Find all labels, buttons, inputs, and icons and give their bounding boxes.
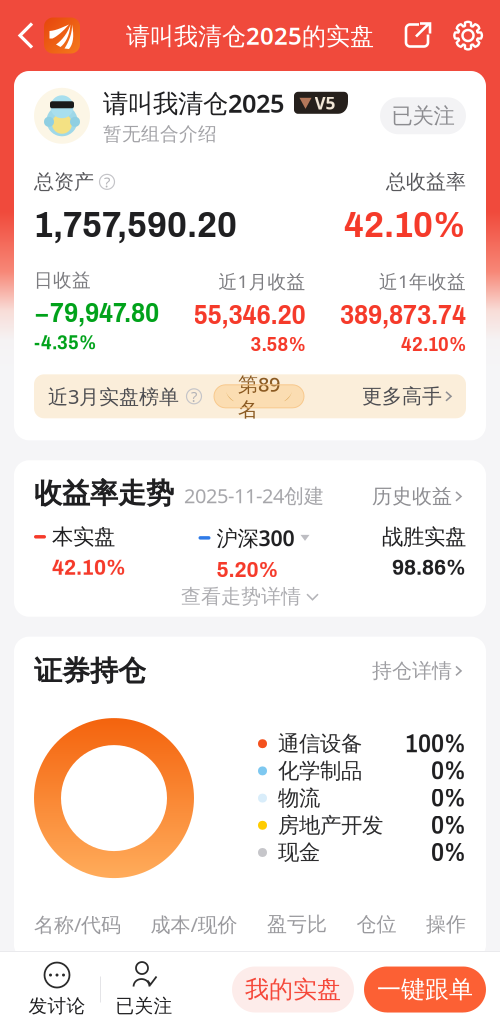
staticText: 查看走势详情	[181, 584, 301, 609]
staticText: 一键跟单	[377, 975, 473, 1004]
staticText: 请叫我清仓2025的实盘	[126, 20, 374, 51]
staticText: 已关注	[391, 103, 454, 129]
button[interactable]: 我的实盘	[232, 966, 354, 1012]
staticText: 0%	[431, 839, 466, 866]
staticText: 仓位	[356, 912, 396, 937]
button[interactable]: 持仓详情	[372, 659, 466, 683]
staticText: 物流	[278, 785, 320, 811]
button[interactable]: 历史收益	[372, 484, 466, 511]
button[interactable]: Back	[10, 5, 44, 65]
staticText: 化学制品	[278, 758, 362, 784]
staticText: 更多高手	[362, 384, 442, 409]
staticText: 历史收益	[372, 484, 452, 509]
staticText: 总收益率	[386, 170, 466, 194]
staticText: 42.10%	[401, 334, 466, 355]
staticText: 成本/现价	[150, 911, 237, 938]
staticText: 1,757,590.20	[34, 204, 237, 245]
staticText: 0%	[431, 757, 466, 785]
staticText: ?	[191, 387, 197, 406]
staticText: 55,346.20	[193, 300, 305, 329]
staticText: ?	[104, 172, 110, 192]
button[interactable]: Share	[396, 7, 440, 63]
staticText: 名称/代码	[34, 911, 121, 938]
staticText: 2025-11-24创建	[184, 482, 324, 509]
button[interactable]: 一键跟单	[364, 966, 486, 1012]
staticText: 42.10%	[344, 204, 466, 245]
staticText: 第89名	[238, 371, 280, 422]
staticText: 暂无组合介绍	[103, 123, 217, 145]
staticText: 请叫我清仓2025	[103, 86, 284, 120]
button[interactable]: 查看走势详情	[34, 583, 466, 611]
staticText: -4.35%	[34, 332, 96, 353]
staticText: 近3月实盘榜单	[48, 383, 179, 410]
staticText: −79,947.80	[34, 299, 159, 328]
staticText: 近1年收益	[379, 269, 466, 294]
staticText: 3.58%	[250, 334, 305, 355]
button[interactable]: 近3月实盘榜单	[34, 374, 466, 418]
button[interactable]: Settings	[446, 7, 490, 63]
staticText: 持仓详情	[372, 659, 452, 683]
button[interactable]: 发讨论	[14, 961, 100, 1017]
staticText: 日收益	[34, 269, 91, 292]
staticText: 本实盘	[52, 524, 115, 550]
staticText: 近1月收益	[218, 269, 305, 294]
staticText: 0%	[431, 811, 466, 839]
staticText: 发讨论	[28, 994, 85, 1017]
staticText: 现金	[278, 839, 320, 866]
staticText: 操作	[426, 912, 466, 937]
staticText: 0%	[431, 784, 466, 812]
staticText: 战胜实盘	[382, 524, 466, 550]
staticText: 389,873.74	[340, 300, 466, 329]
staticText: 通信设备	[278, 731, 362, 757]
staticText: 收益率走势	[34, 476, 174, 511]
staticText: 房地产开发	[278, 812, 383, 838]
staticText: 我的实盘	[245, 975, 341, 1004]
staticText: 盈亏比	[267, 912, 327, 937]
button[interactable]: App	[44, 17, 80, 53]
staticText: 5.20%	[216, 557, 278, 582]
staticText: 100%	[405, 730, 466, 757]
staticText: 已关注	[115, 994, 172, 1017]
button[interactable]: 已关注	[380, 97, 466, 134]
staticText: 证券持仓	[34, 654, 146, 688]
staticText: 98.86%	[392, 555, 466, 580]
staticText: 总资产	[34, 170, 94, 194]
staticText: 42.10%	[52, 555, 126, 580]
button[interactable]: 已关注	[101, 961, 187, 1017]
staticText: V5	[314, 91, 335, 114]
staticText: 沪深300	[216, 524, 294, 552]
